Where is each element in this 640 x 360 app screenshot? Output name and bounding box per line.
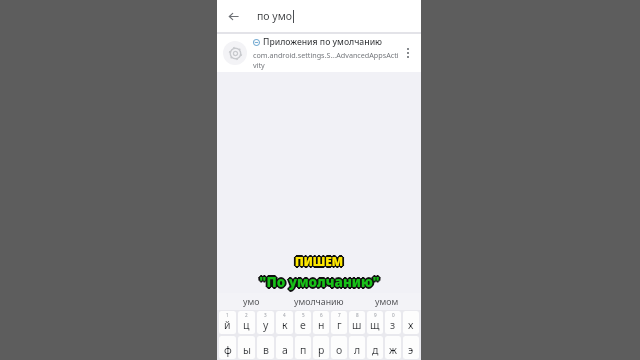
button[interactable]: умом xyxy=(353,293,421,310)
button[interactable]: п xyxy=(295,336,311,359)
staticText: ПИШЕМ xyxy=(293,254,341,270)
staticText: ПИШЕМ xyxy=(294,255,342,271)
staticText: 8 xyxy=(356,312,359,318)
staticText: 5 xyxy=(302,312,305,318)
staticText: ПИШЕМ xyxy=(296,255,344,271)
staticText: 0 xyxy=(392,312,395,318)
button[interactable]: 4 xyxy=(276,311,293,334)
staticText: ПИШЕМ xyxy=(296,254,344,270)
staticText: умо xyxy=(243,296,260,308)
staticText: д xyxy=(372,343,379,357)
button[interactable]: Back xyxy=(217,0,249,32)
button[interactable]: в xyxy=(257,336,274,359)
button[interactable]: ф xyxy=(219,336,236,359)
staticText: ПИШЕМ xyxy=(295,256,343,272)
button[interactable]: 5 xyxy=(295,311,311,334)
staticText: "По умолчанию" xyxy=(258,274,379,292)
staticText: 6 xyxy=(320,312,323,318)
staticText: 7 xyxy=(338,312,341,318)
staticText: "По умолчанию" xyxy=(259,273,380,291)
staticText: 1 xyxy=(226,312,229,318)
staticText: "По умолчанию" xyxy=(260,273,381,291)
staticText: х xyxy=(408,318,414,332)
staticText: ПИШЕМ xyxy=(294,253,342,269)
button[interactable]: л xyxy=(349,336,365,359)
button[interactable]: д xyxy=(367,336,383,359)
staticText: ПИШЕМ xyxy=(296,253,344,269)
staticText: Приложения по умолчанию xyxy=(263,36,383,48)
staticText: "По умолчанию" xyxy=(260,274,381,292)
button[interactable]: More options xyxy=(401,34,415,72)
button[interactable]: х xyxy=(403,311,419,334)
staticText: 2 xyxy=(245,312,248,318)
staticText: ПИШЕМ xyxy=(295,252,343,268)
staticText: к xyxy=(282,318,288,332)
staticText: "По умолчанию" xyxy=(259,272,380,290)
staticText: ПИШЕМ xyxy=(297,254,345,270)
button[interactable]: 6 xyxy=(313,311,329,334)
button[interactable]: Приложения по умолчанию xyxy=(217,34,421,72)
staticText: а xyxy=(282,343,288,357)
button[interactable]: э xyxy=(403,336,419,359)
staticText: "По умолчанию" xyxy=(260,272,381,290)
button[interactable]: 7 xyxy=(331,311,347,334)
staticText: "По умолчанию" xyxy=(259,271,380,289)
button[interactable]: умо xyxy=(217,293,285,310)
staticText: у xyxy=(263,318,269,332)
button[interactable]: 2 xyxy=(238,311,255,334)
button[interactable]: 9 xyxy=(367,311,383,334)
button[interactable]: ы xyxy=(238,336,255,359)
staticText: "По умолчанию" xyxy=(258,272,379,290)
staticText: "По умолчанию" xyxy=(258,273,379,291)
button[interactable]: о xyxy=(331,336,347,359)
staticText: э xyxy=(408,343,414,357)
staticText: ф xyxy=(224,343,232,357)
button[interactable]: 8 xyxy=(349,311,365,334)
button[interactable]: ж xyxy=(385,336,401,359)
staticText: 3 xyxy=(264,312,267,318)
staticText: л xyxy=(354,343,361,357)
staticText: н xyxy=(318,318,325,332)
staticText: ПИШЕМ xyxy=(294,254,342,270)
staticText: 4 xyxy=(283,312,286,318)
staticText: "По умолчанию" xyxy=(259,274,380,292)
staticText: "По умолчанию" xyxy=(261,273,382,291)
staticText: ПИШЕМ xyxy=(295,253,343,269)
staticText: по умо xyxy=(257,9,292,23)
staticText: com.android.settings.S...AdvancedAppsAct… xyxy=(253,50,401,70)
staticText: п xyxy=(300,343,307,357)
staticText: "По умолчанию" xyxy=(259,275,380,293)
staticText: ж xyxy=(389,343,397,357)
staticText: умолчанию xyxy=(294,296,344,308)
button[interactable]: 3 xyxy=(257,311,274,334)
staticText: ПИШЕМ xyxy=(295,254,343,270)
staticText: ы xyxy=(243,343,251,357)
button[interactable]: р xyxy=(313,336,329,359)
button[interactable]: а xyxy=(276,336,293,359)
staticText: й xyxy=(224,318,231,332)
staticText: р xyxy=(318,343,325,357)
staticText: в xyxy=(263,343,269,357)
staticText: щ xyxy=(370,318,380,332)
button[interactable]: 1 xyxy=(219,311,236,334)
staticText: е xyxy=(300,318,306,332)
staticText: ПИШЕМ xyxy=(295,255,343,271)
staticText: ш xyxy=(352,318,362,332)
button[interactable]: умолчанию xyxy=(285,293,353,310)
staticText: "По умолчанию" xyxy=(257,273,378,291)
staticText: умом xyxy=(375,296,399,308)
staticText: г xyxy=(337,318,342,332)
button[interactable]: 0 xyxy=(385,311,401,334)
staticText: з xyxy=(390,318,396,332)
staticText: ц xyxy=(243,318,250,332)
staticText: о xyxy=(336,343,343,357)
staticText: 9 xyxy=(374,312,377,318)
